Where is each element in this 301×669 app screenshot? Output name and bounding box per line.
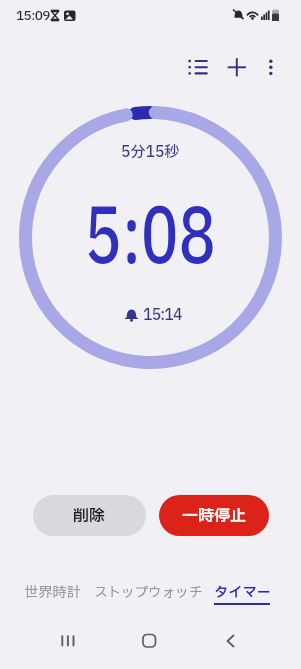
staticText: 15:14 <box>143 304 182 326</box>
button[interactable] <box>135 626 163 654</box>
staticText: 削除 <box>73 504 106 528</box>
button[interactable]: ストップウォッチ <box>93 579 203 606</box>
staticText: 5:08 <box>85 182 216 281</box>
staticText: 一時停止 <box>182 504 247 528</box>
button[interactable] <box>183 53 211 81</box>
button[interactable]: 削除 <box>33 495 146 536</box>
button[interactable]: タイマー <box>210 579 275 606</box>
button[interactable] <box>226 56 248 78</box>
staticText: 世界時計 <box>24 582 81 603</box>
button[interactable]: 15:14 <box>125 304 182 326</box>
button[interactable]: 世界時計 <box>19 579 85 606</box>
staticText: 15:09 <box>16 6 50 25</box>
staticText: ストップウォッチ <box>94 583 203 603</box>
staticText: 5分15秒 <box>121 141 180 163</box>
button[interactable]: 一時停止 <box>159 495 269 536</box>
staticText: タイマー <box>214 582 271 603</box>
button[interactable] <box>217 626 245 654</box>
button[interactable] <box>52 626 84 654</box>
button[interactable] <box>261 53 281 81</box>
